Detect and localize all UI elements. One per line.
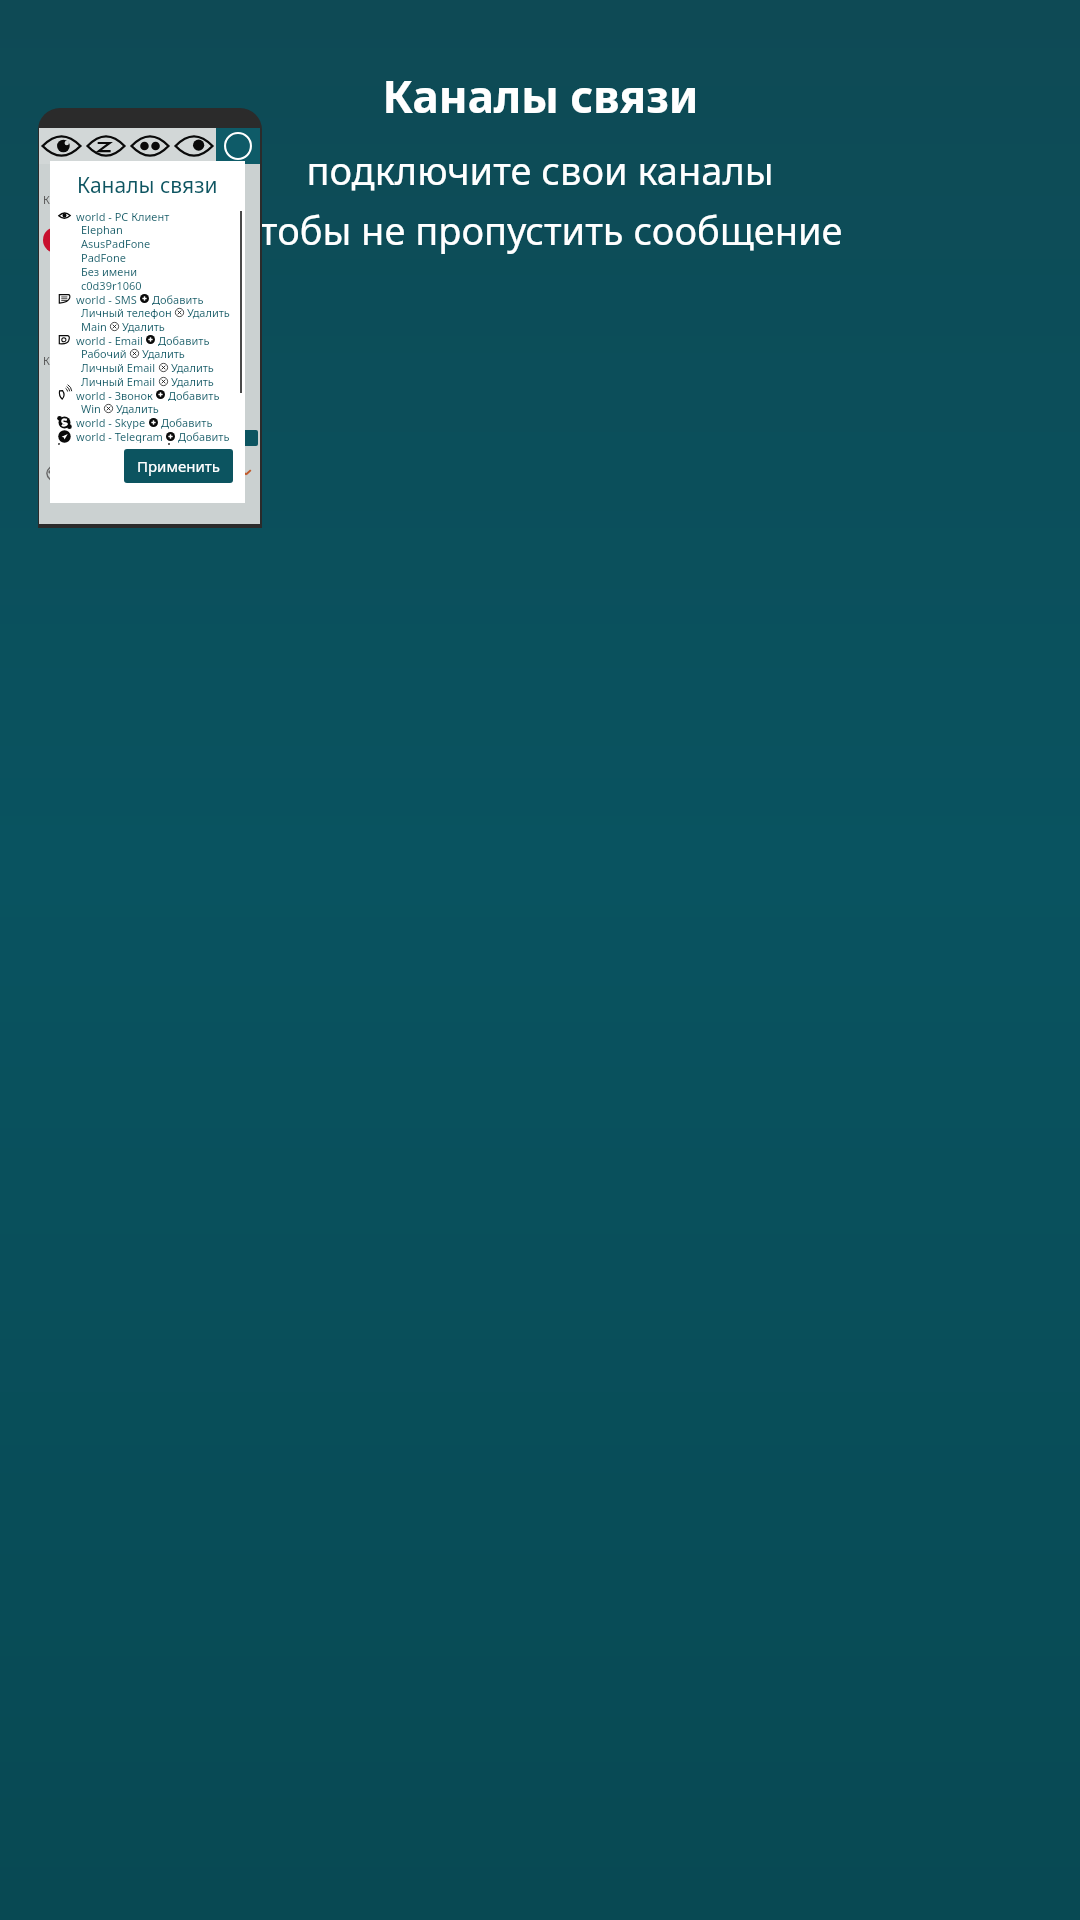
button[interactable]: Личный Email	[50, 374, 245, 388]
button[interactable]: Без имени	[50, 264, 245, 278]
staticText: Личный Email	[81, 374, 156, 388]
staticText: Личный Email	[81, 360, 156, 374]
staticText: world - SMS	[76, 292, 137, 305]
staticText: Main	[81, 319, 107, 333]
staticText: Добавить	[152, 292, 204, 305]
staticText: 2:37 pm	[208, 129, 254, 145]
staticText: Удалить	[171, 374, 214, 388]
button[interactable]: world - Звонок	[50, 388, 245, 401]
button[interactable]: Main	[50, 319, 245, 333]
staticText: Каналы связи	[382, 66, 699, 126]
button[interactable]: world - Skype	[50, 415, 245, 429]
staticText: Каналы связи	[77, 171, 218, 200]
staticText: чтобы не пропустить сообщение	[237, 204, 843, 256]
other: world - SMS	[58, 292, 71, 305]
other: world - Skype	[58, 416, 71, 429]
staticText: Удалить	[171, 360, 214, 374]
staticText: AsusPadFone	[81, 236, 151, 250]
button[interactable]: c0d39r1060	[50, 278, 245, 292]
staticText: Ко	[43, 192, 57, 207]
button[interactable]: world - Email	[50, 333, 245, 346]
staticText: world - Email	[76, 333, 143, 346]
other: world - Telegram	[58, 430, 71, 443]
staticText: PadFone	[81, 250, 126, 264]
staticText: world - Telegram	[76, 429, 163, 443]
button[interactable]: Личный Email	[50, 360, 245, 374]
button[interactable]: world - Telegram	[50, 429, 245, 443]
staticText: world - Звонок	[76, 388, 153, 401]
button[interactable]: PadFone	[50, 250, 245, 264]
staticText: 44%	[162, 130, 184, 145]
staticText: Удалить	[122, 319, 165, 333]
button[interactable]: Рабочий	[50, 346, 245, 360]
staticText: world - PC Клиент	[76, 209, 170, 222]
staticText: Личный телефон	[81, 305, 172, 319]
button[interactable]: Применить	[124, 449, 233, 483]
button[interactable]: AsusPadFone	[50, 236, 245, 250]
staticText: Применить	[137, 456, 220, 476]
button[interactable]: world - PC Клиент	[50, 209, 245, 222]
staticText: Добавить	[158, 333, 210, 346]
staticText: Удалить	[187, 305, 230, 319]
button[interactable]: world - Facebook	[50, 443, 245, 445]
staticText: Win	[81, 401, 101, 415]
button[interactable]: Личный телефон	[50, 305, 245, 319]
other: world - Email	[58, 333, 71, 346]
staticText: Elephan	[81, 222, 123, 236]
staticText: c0d39r1060	[81, 278, 142, 292]
staticText: Добавить	[168, 388, 220, 401]
button[interactable]: Win	[50, 401, 245, 415]
other: world - Звонок	[58, 388, 71, 401]
staticText: Рабочий	[81, 346, 127, 360]
other: world - PC Клиент	[58, 209, 71, 222]
button[interactable]: world - SMS	[50, 292, 245, 305]
staticText: подключите свои каналы	[306, 144, 774, 196]
staticText: Ка	[43, 353, 56, 368]
staticText: Удалить	[142, 346, 185, 360]
staticText: Добавить	[178, 429, 230, 443]
staticText: Добавить	[161, 415, 213, 429]
staticText: Без имени	[81, 264, 137, 278]
staticText: world - Skype	[76, 415, 146, 429]
other: world - Facebook	[58, 443, 71, 445]
button[interactable]: Elephan	[50, 222, 245, 236]
staticText: Удалить	[116, 401, 159, 415]
